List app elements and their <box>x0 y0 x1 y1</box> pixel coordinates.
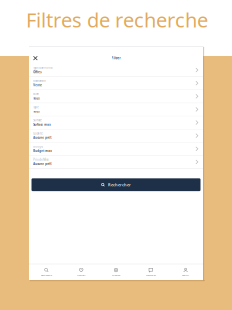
staticText: Rechercher <box>108 182 131 187</box>
staticText: FAVORIS <box>77 274 85 277</box>
staticText: PUBLIER <box>112 274 120 277</box>
staticText: Recherche <box>33 79 45 83</box>
staticText: RECHERCHE <box>41 274 52 277</box>
staticText: Offres <box>33 70 41 74</box>
button[interactable]: Localité <box>29 130 203 143</box>
button[interactable]: Prix de Mise <box>29 156 203 169</box>
button[interactable]: Rechercher <box>31 178 200 191</box>
staticText: PROFIL <box>182 274 189 277</box>
staticText: Budget max <box>33 149 51 153</box>
staticText: Bien <box>33 92 39 96</box>
button[interactable]: Type <box>29 103 203 116</box>
button[interactable]: PROFIL <box>168 265 203 280</box>
button[interactable]: MESSAGES <box>133 265 168 280</box>
button[interactable]: Budget <box>29 143 203 156</box>
button[interactable]: Bien <box>29 90 203 103</box>
staticText: Aucune préf. <box>33 162 52 166</box>
staticText: Filtrer <box>111 56 120 60</box>
button[interactable]: PUBLIER <box>99 265 133 280</box>
staticText: Budget <box>33 145 43 148</box>
staticText: Prix de Mise <box>33 158 48 161</box>
staticText: Localité <box>33 132 42 135</box>
button[interactable]: RECHERCHE <box>29 265 64 280</box>
staticText: Surface <box>33 119 41 122</box>
staticText: Surface max <box>33 123 50 126</box>
staticText: Type d'annonce <box>33 66 52 70</box>
staticText: MESSAGES <box>146 274 156 277</box>
staticText: Vente <box>33 83 42 87</box>
staticText: Filtres de recherche <box>26 6 208 33</box>
button[interactable]: FAVORIS <box>64 265 99 280</box>
button[interactable]: Fermer <box>31 54 40 63</box>
button[interactable]: Surface <box>29 116 203 129</box>
staticText: Tous <box>33 110 39 113</box>
staticText: Tous <box>33 97 39 100</box>
staticText: Type <box>33 105 38 109</box>
button[interactable]: Recherche <box>29 77 203 90</box>
staticText: Aucune préf. <box>33 136 52 140</box>
button[interactable]: Type d'annonce <box>29 64 203 77</box>
